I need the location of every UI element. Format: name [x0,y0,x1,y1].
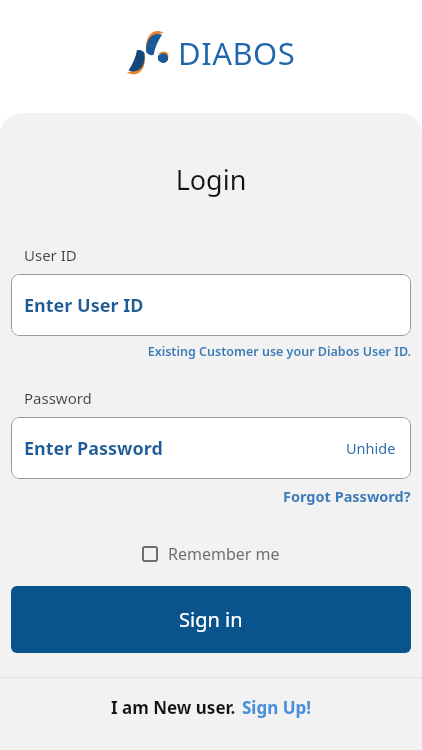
staticText: I am New user. [111,696,236,719]
staticText: DIABOS [178,32,296,74]
staticText: Remember me [168,543,280,565]
button[interactable]: Forgot Password? [283,486,411,506]
staticText: Unhide [346,438,396,458]
button[interactable]: Enter User ID [11,274,411,336]
staticText: Login [0,161,422,198]
staticText: Existing Customer use your Diabos User I… [0,343,411,360]
staticText: Sign in [179,606,243,633]
staticText: Sign Up! [242,696,312,719]
button[interactable]: Unhide [344,434,398,462]
staticText: Password [24,388,92,408]
button[interactable]: Sign in [11,586,411,653]
staticText: Enter User ID [24,293,144,318]
staticText: Forgot Password? [283,486,411,506]
other: Diabos logo [126,30,168,76]
staticText: Enter Password [24,436,163,461]
staticText: User ID [24,245,77,265]
button[interactable]: Sign Up! [242,696,312,719]
button[interactable]: Remember me [136,539,286,569]
button[interactable]: Enter Password [11,417,411,479]
